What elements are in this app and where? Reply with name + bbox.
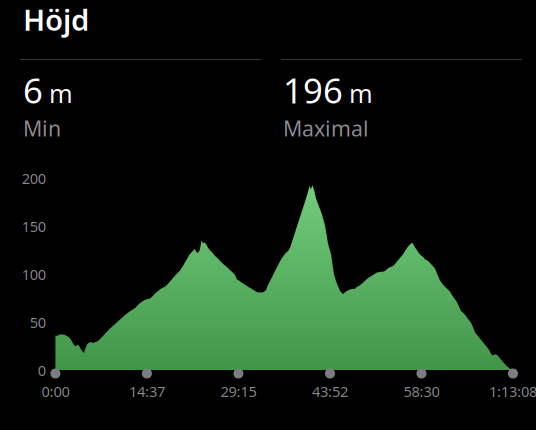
staticText: 150 — [22, 216, 46, 236]
staticText: Min — [23, 114, 61, 142]
staticText: 0:00 — [41, 381, 69, 401]
staticText: 100 — [22, 264, 46, 284]
staticText: 200 — [22, 168, 46, 188]
staticText: 196 — [283, 67, 343, 113]
staticText: 50 — [30, 312, 46, 332]
staticText: 1:13:08 — [489, 381, 536, 401]
staticText: Höjd — [23, 0, 89, 39]
staticText: 58:30 — [403, 381, 439, 401]
staticText: 29:15 — [220, 381, 256, 401]
staticText: m — [49, 76, 73, 110]
staticText: m — [349, 76, 373, 110]
staticText: 14:37 — [129, 381, 165, 401]
staticText: 6 — [23, 67, 43, 113]
staticText: Maximal — [283, 114, 369, 142]
staticText: 43:52 — [312, 381, 348, 401]
staticText: 0 — [38, 360, 46, 380]
